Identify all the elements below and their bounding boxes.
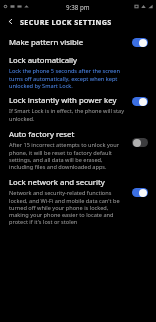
- staticText: Lock the phone 5 seconds after the scree…: [9, 67, 127, 89]
- staticText: Auto factory reset: [9, 129, 75, 140]
- button[interactable]: Auto factory reset: [0, 129, 156, 170]
- button[interactable]: Lock instantly with power key: [0, 95, 156, 122]
- staticText: Network and security-related functions l…: [9, 189, 127, 225]
- button[interactable]: Make pattern visible: [0, 37, 156, 48]
- button[interactable]: Off: [132, 138, 148, 147]
- staticText: If Smart Lock is in effect, the phone wi…: [9, 107, 127, 122]
- staticText: 9:38 pm: [66, 3, 90, 11]
- button[interactable]: On: [132, 188, 148, 197]
- button[interactable]: Lock automatically: [0, 55, 156, 89]
- button[interactable]: On: [132, 97, 148, 106]
- button[interactable]: Back: [0, 13, 20, 30]
- staticText: Lock network and security: [9, 177, 105, 188]
- button[interactable]: On: [132, 38, 148, 47]
- staticText: Make pattern visible: [9, 37, 84, 48]
- staticText: After 15 incorrect attempts to unlock yo…: [9, 141, 127, 170]
- staticText: Lock instantly with power key: [9, 95, 117, 106]
- staticText: Lock automatically: [9, 55, 78, 66]
- button[interactable]: Lock network and security: [0, 177, 156, 225]
- staticText: SECURE LOCK SETTINGS: [20, 17, 112, 27]
